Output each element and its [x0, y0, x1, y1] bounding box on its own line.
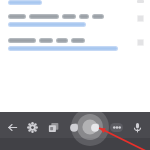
button[interactable]: More options: [110, 123, 123, 132]
button[interactable]: Tabs: [43, 114, 64, 140]
button[interactable]: [8, 38, 144, 51]
button[interactable]: [8, 14, 144, 27]
button[interactable]: [8, 0, 144, 5]
button[interactable]: Settings: [22, 114, 43, 140]
button[interactable]: Shortcuts: [64, 114, 85, 140]
button[interactable]: Back: [2, 114, 22, 140]
button[interactable]: More options: [106, 114, 127, 140]
button[interactable]: Voice search: [127, 114, 148, 140]
button[interactable]: Home: [85, 114, 106, 140]
